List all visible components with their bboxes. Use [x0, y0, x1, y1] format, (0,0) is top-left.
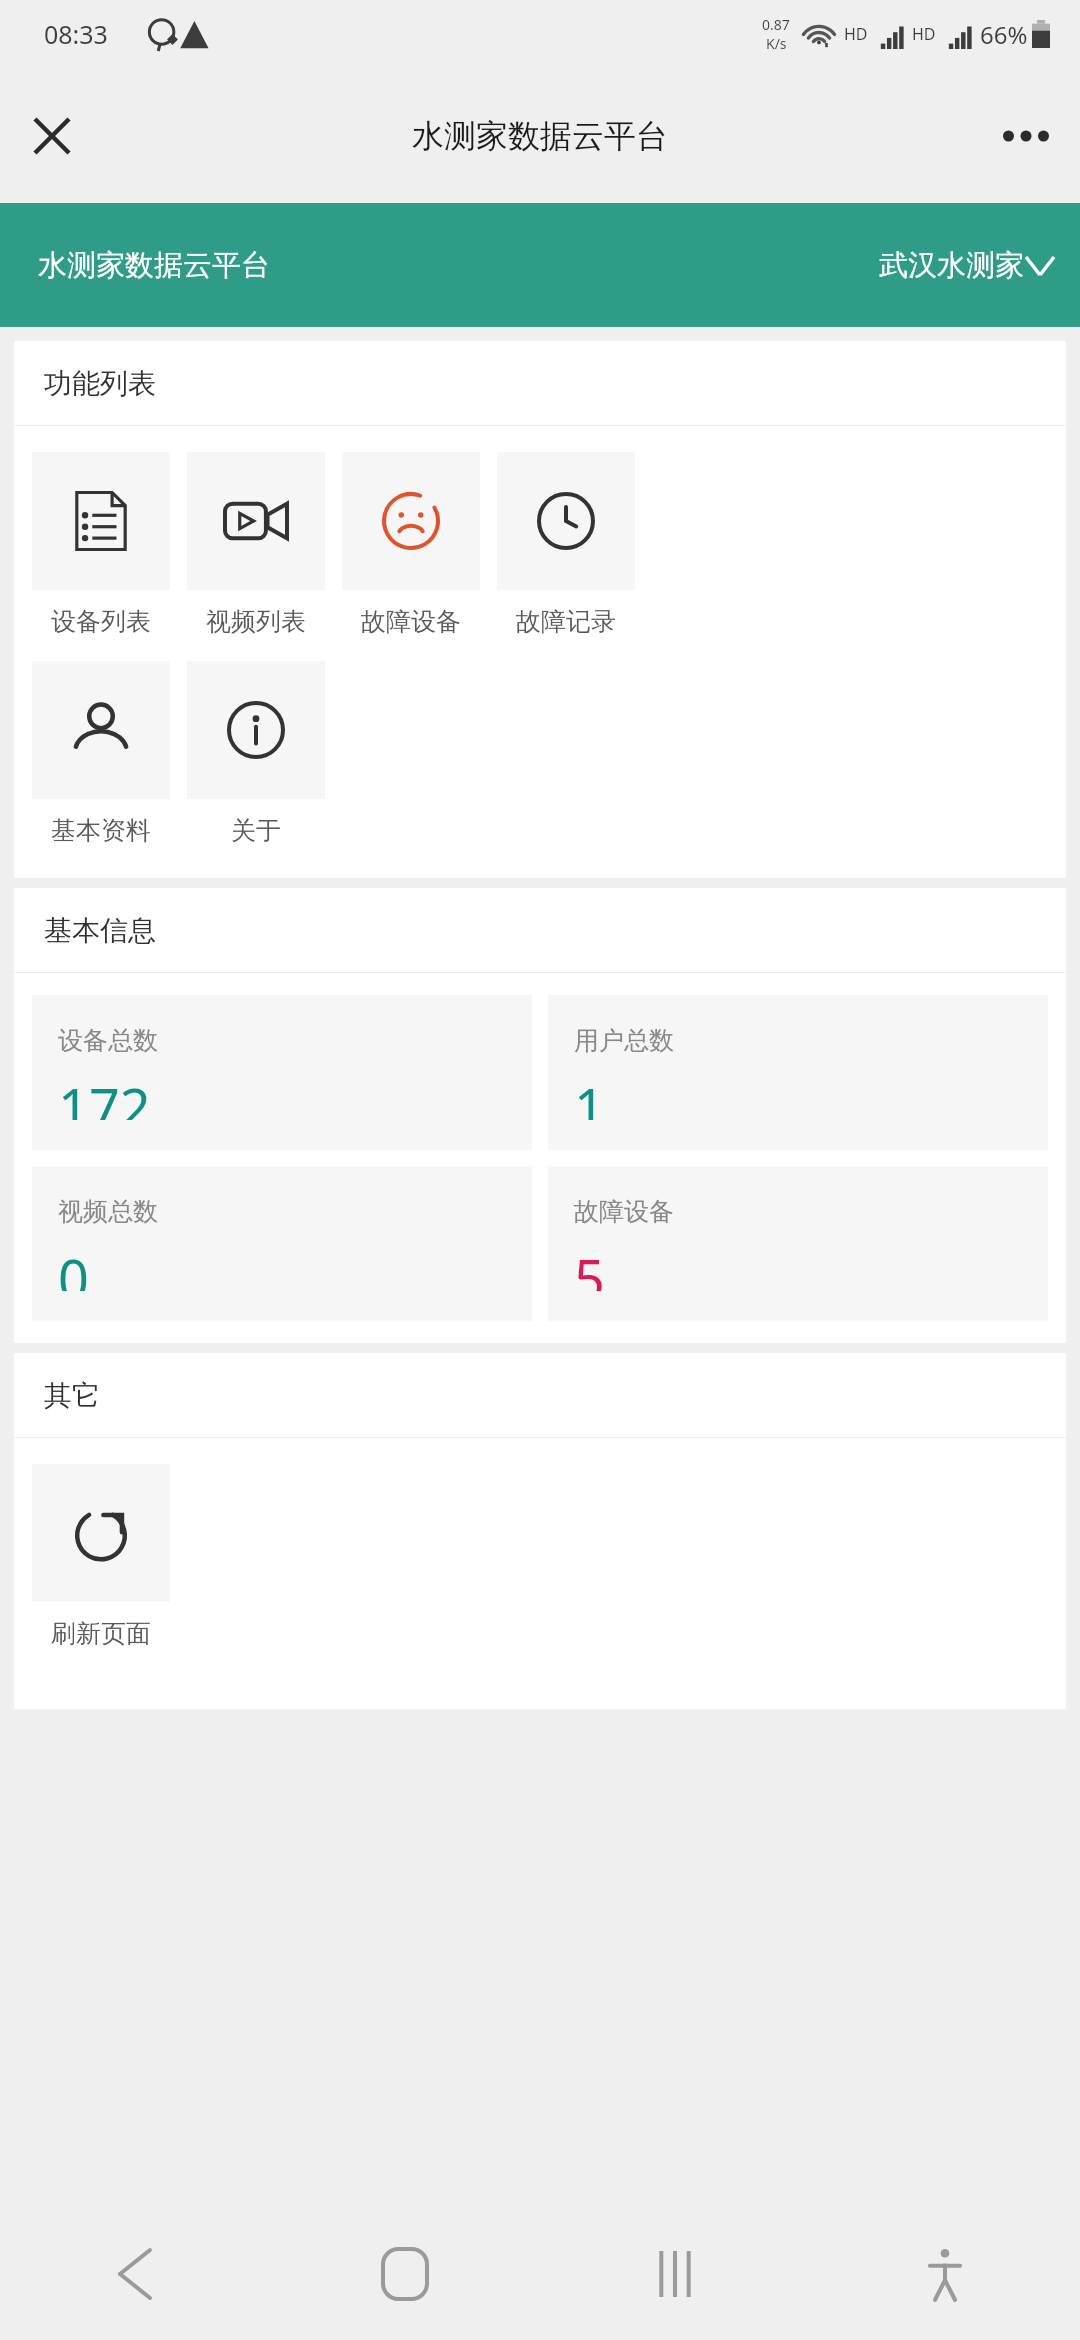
- button[interactable]: 故障设备: [342, 452, 480, 637]
- staticText: 关于: [231, 815, 281, 846]
- button[interactable]: Recents: [540, 2207, 810, 2340]
- staticText: 其它: [44, 1378, 100, 1413]
- staticText: 基本资料: [51, 815, 151, 846]
- staticText: 故障设备: [361, 606, 461, 637]
- staticText: HD: [844, 23, 868, 45]
- staticText: 0.87: [762, 15, 790, 34]
- staticText: 视频总数: [58, 1196, 158, 1227]
- staticText: 视频列表: [206, 606, 306, 637]
- button[interactable]: 设备列表: [32, 452, 170, 637]
- staticText: 设备总数: [58, 1025, 158, 1056]
- staticText: 基本信息: [44, 913, 156, 948]
- button[interactable]: 刷新页面: [32, 1464, 170, 1649]
- button[interactable]: Home: [270, 2207, 540, 2340]
- staticText: 水测家数据云平台: [412, 116, 668, 156]
- staticText: 水测家数据云平台: [38, 247, 270, 284]
- button[interactable]: Back: [0, 2207, 270, 2340]
- staticText: 0: [58, 1241, 89, 1291]
- staticText: 66%: [980, 18, 1028, 51]
- staticText: 5: [574, 1241, 605, 1291]
- staticText: 设备列表: [51, 606, 151, 637]
- staticText: 172: [58, 1070, 151, 1120]
- button[interactable]: Accessibility: [810, 2207, 1080, 2340]
- staticText: 刷新页面: [51, 1618, 151, 1649]
- button[interactable]: 基本资料: [32, 661, 170, 846]
- staticText: K/s: [766, 34, 787, 53]
- staticText: 08:33: [44, 17, 108, 51]
- button[interactable]: 故障记录: [497, 452, 635, 637]
- staticText: 故障记录: [516, 606, 616, 637]
- button[interactable]: 视频列表: [187, 452, 325, 637]
- staticText: 武汉水测家: [879, 247, 1024, 284]
- staticText: HD: [912, 23, 936, 45]
- staticText: 功能列表: [44, 366, 156, 401]
- staticText: 用户总数: [574, 1025, 674, 1056]
- button[interactable]: 武汉水测家: [879, 247, 1054, 284]
- staticText: 故障设备: [574, 1196, 674, 1227]
- staticText: 1: [574, 1070, 605, 1120]
- button[interactable]: More options: [990, 100, 1062, 172]
- button[interactable]: 关于: [187, 661, 325, 846]
- button[interactable]: Close: [16, 100, 88, 172]
